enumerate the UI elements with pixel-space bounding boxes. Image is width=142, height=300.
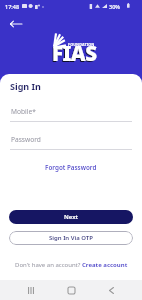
staticText: Password bbox=[11, 135, 41, 144]
staticText: Forgot Password bbox=[45, 163, 97, 172]
button[interactable]: Create account bbox=[82, 261, 128, 269]
staticText: Don't have an account? bbox=[15, 261, 82, 269]
staticText: Mobile* bbox=[11, 107, 36, 116]
staticText: FIAS bbox=[51, 40, 96, 68]
staticText: 30% bbox=[109, 3, 120, 10]
button[interactable]: Back bbox=[101, 282, 121, 298]
button[interactable]: Back bbox=[6, 15, 26, 32]
staticText: FOUNDATION bbox=[68, 42, 95, 47]
staticText: 17:48 bbox=[5, 3, 20, 10]
button[interactable]: Recent apps bbox=[21, 282, 41, 298]
staticText: Create account bbox=[82, 261, 128, 269]
staticText: Sign In Via OTP bbox=[49, 234, 93, 242]
staticText: Sign In bbox=[10, 80, 41, 92]
button[interactable]: Forgot Password bbox=[45, 163, 97, 172]
button[interactable]: Sign In Via OTP bbox=[9, 231, 133, 245]
staticText: FIAS bbox=[52, 39, 97, 67]
button[interactable]: Home bbox=[61, 282, 81, 298]
button[interactable]: Next bbox=[9, 210, 133, 224]
staticText: Next bbox=[64, 213, 78, 221]
